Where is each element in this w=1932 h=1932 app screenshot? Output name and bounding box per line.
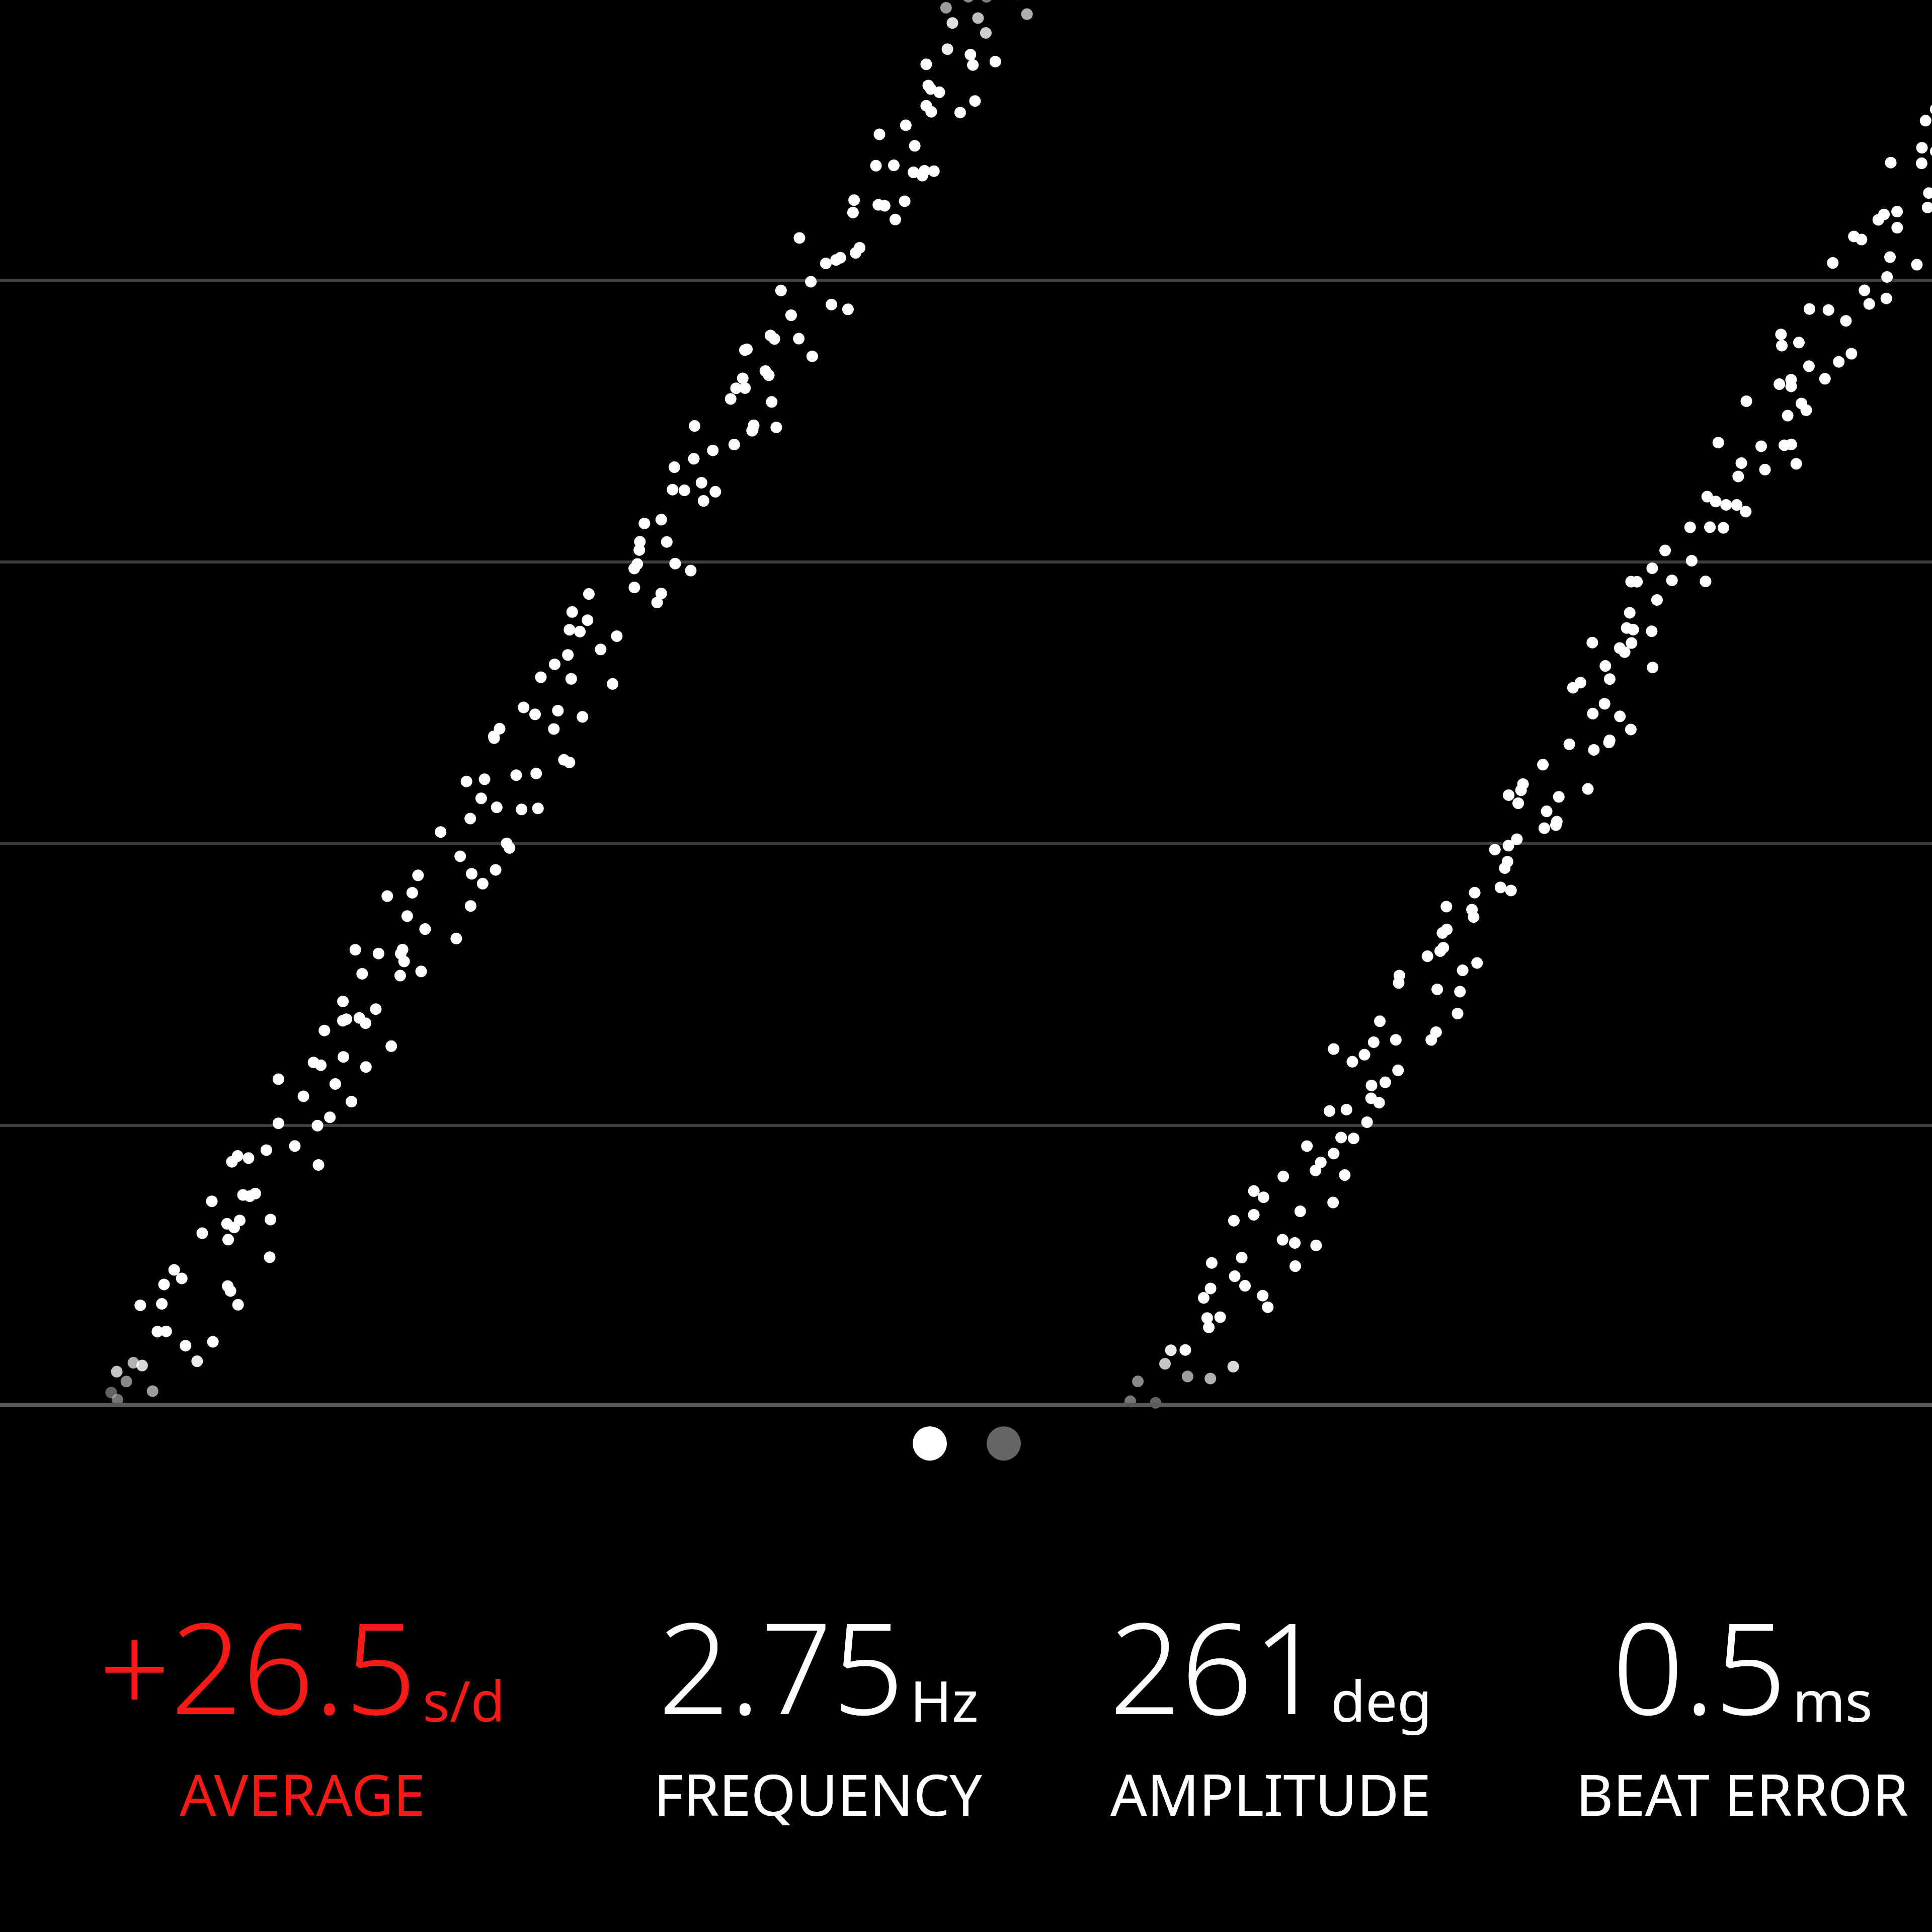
staticText: ms [1793,1661,1873,1738]
staticText: 261 [1109,1580,1325,1751]
button[interactable]: 261 [1054,1580,1487,1832]
staticText: Hz [910,1661,979,1738]
staticText: +26.5 [99,1580,417,1751]
button[interactable]: 0.5 [1525,1580,1932,1832]
staticText: 2.75 [658,1580,904,1751]
staticText: FREQUENCY [654,1754,982,1832]
staticText: BEAT ERROR [1576,1754,1908,1832]
staticText: 0.5 [1612,1580,1787,1751]
staticText: AVERAGE [180,1754,425,1832]
staticText: AMPLITUDE [1110,1754,1431,1832]
button[interactable]: 2.75 [601,1580,1034,1832]
staticText: deg [1331,1661,1432,1738]
staticText: s/d [423,1661,506,1738]
button[interactable]: Page 1 of 2 [913,1426,1021,1461]
button[interactable]: +26.5 [86,1580,518,1832]
